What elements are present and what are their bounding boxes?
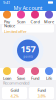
button[interactable]: Pay [0,11,14,23]
button[interactable]: Card [28,11,42,23]
staticText: Recommended [3,80,29,86]
button[interactable]: Loan [0,68,14,80]
staticText: Loan [3,76,11,81]
button[interactable]: Fund [29,87,54,99]
button[interactable]: Fund [28,68,42,80]
button[interactable]: More [42,11,56,23]
staticText: 4.2% [10,93,18,98]
staticText: 157 [20,42,35,55]
staticText: Save [17,76,25,81]
staticText: Limited offer [4,29,27,34]
staticText: Pay [4,19,10,24]
staticText: Fund [31,76,39,81]
staticText: points [23,55,32,58]
button[interactable]: Gold [2,87,27,99]
button[interactable]: Scan [14,11,28,23]
staticText: Fund [37,87,45,93]
button[interactable]: Save [14,68,28,80]
staticText: 3.8% [37,93,45,98]
staticText: Gold [10,87,18,93]
staticText: My Account [13,4,42,12]
staticText: More [44,19,54,24]
button[interactable]: Life [42,68,56,80]
staticText: Scan [17,19,25,24]
button[interactable]: Notice [2,24,54,32]
staticText: 9:41 [3,0,10,5]
staticText: Life [46,76,52,81]
staticText: Card [30,19,39,24]
staticText: Notice [4,23,15,28]
